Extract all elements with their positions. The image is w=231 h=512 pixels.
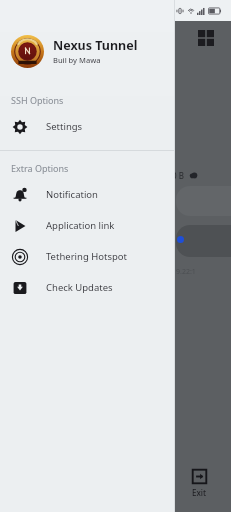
button[interactable]: Exit	[176, 462, 222, 504]
staticText: Check Updates	[46, 281, 113, 294]
staticText: Buil by Mawa	[53, 55, 101, 65]
button[interactable]	[176, 225, 231, 257]
staticText: 9.22:1	[176, 267, 196, 277]
button[interactable]: Tethering Hotspot	[0, 241, 175, 272]
staticText: Extra Options	[11, 162, 69, 174]
button[interactable]: Nexus Tunnel	[0, 21, 175, 81]
button[interactable]: Windows	[198, 30, 214, 46]
button[interactable]: Settings	[0, 111, 175, 142]
staticText: 0 B	[172, 170, 184, 181]
staticText: Exit	[192, 487, 207, 498]
button[interactable]: Check Updates	[0, 272, 175, 303]
staticText: Tethering Hotspot	[46, 250, 127, 263]
staticText: Nexus Tunnel	[53, 37, 138, 54]
button[interactable]: Notification	[0, 179, 175, 210]
staticText: Notification	[46, 188, 98, 201]
button[interactable]: Application link	[0, 210, 175, 241]
staticText: SSH Options	[11, 94, 64, 106]
staticText: Application link	[46, 219, 115, 232]
staticText: Settings	[46, 120, 83, 133]
